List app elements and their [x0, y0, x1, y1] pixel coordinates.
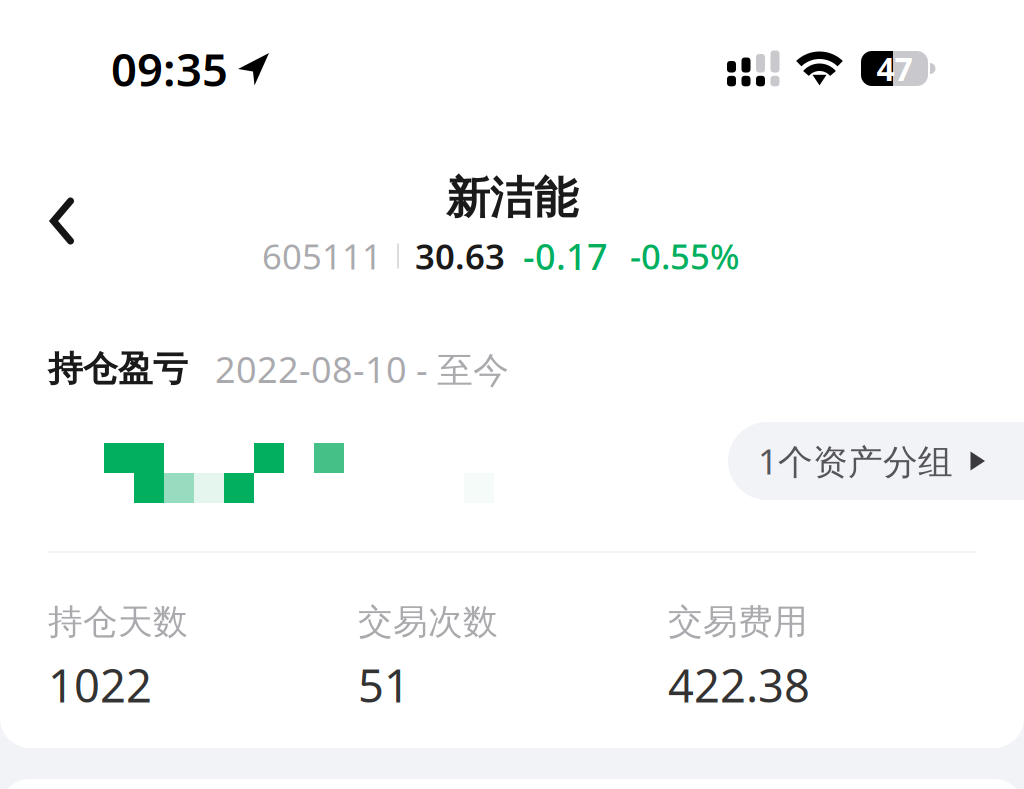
staticText: 09:35 — [111, 39, 228, 99]
staticText: 持仓盈亏 — [48, 348, 188, 390]
staticText: 605111 — [262, 233, 382, 279]
staticText: 持仓天数 — [48, 601, 188, 643]
staticText: 1022 — [48, 655, 152, 715]
staticText: 新洁能 — [446, 171, 578, 225]
staticText: 交易费用 — [668, 601, 808, 643]
staticText: -0.55% — [630, 233, 740, 279]
button[interactable]: Back — [16, 175, 108, 267]
staticText: -0.17 — [523, 232, 608, 280]
staticText: 47 — [876, 47, 912, 90]
staticText: 1个资产分组 — [758, 438, 953, 484]
button[interactable]: 1个资产分组 — [728, 422, 1024, 500]
staticText: 30.63 — [415, 233, 505, 279]
staticText: 2022-08-10 - 至今 — [215, 345, 509, 393]
staticText: 交易次数 — [358, 601, 498, 643]
staticText: 51 — [358, 655, 410, 715]
staticText: 422.38 — [668, 655, 810, 715]
